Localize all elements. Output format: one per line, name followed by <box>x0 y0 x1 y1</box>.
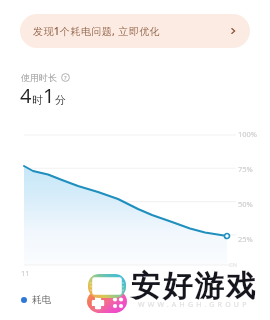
staticText: 11 <box>21 268 30 278</box>
staticText: 发现1个耗电问题, 立即优化 <box>33 24 160 38</box>
staticText: 使用时长 <box>21 72 57 83</box>
staticText: 100% <box>238 129 258 139</box>
staticText: 75% <box>238 164 253 174</box>
staticText: 安好游戏 <box>131 268 258 305</box>
staticText: 耗电 <box>32 294 51 306</box>
staticText: CN <box>229 261 238 269</box>
staticText: 时 <box>32 93 43 107</box>
other: Info <box>61 73 70 82</box>
button[interactable]: 耗电 <box>21 294 51 306</box>
staticText: 4 <box>20 82 32 109</box>
staticText: ? <box>64 74 67 82</box>
staticText: 分 <box>55 93 66 107</box>
button[interactable]: 发现1个耗电问题, 立即优化 <box>20 14 250 48</box>
staticText: 25% <box>238 234 253 244</box>
staticText: WWW.AHGH.GROUP <box>138 300 250 310</box>
button[interactable]: 使用时长 <box>21 72 70 83</box>
staticText: 1 <box>43 82 55 109</box>
staticText: 50% <box>238 199 253 209</box>
